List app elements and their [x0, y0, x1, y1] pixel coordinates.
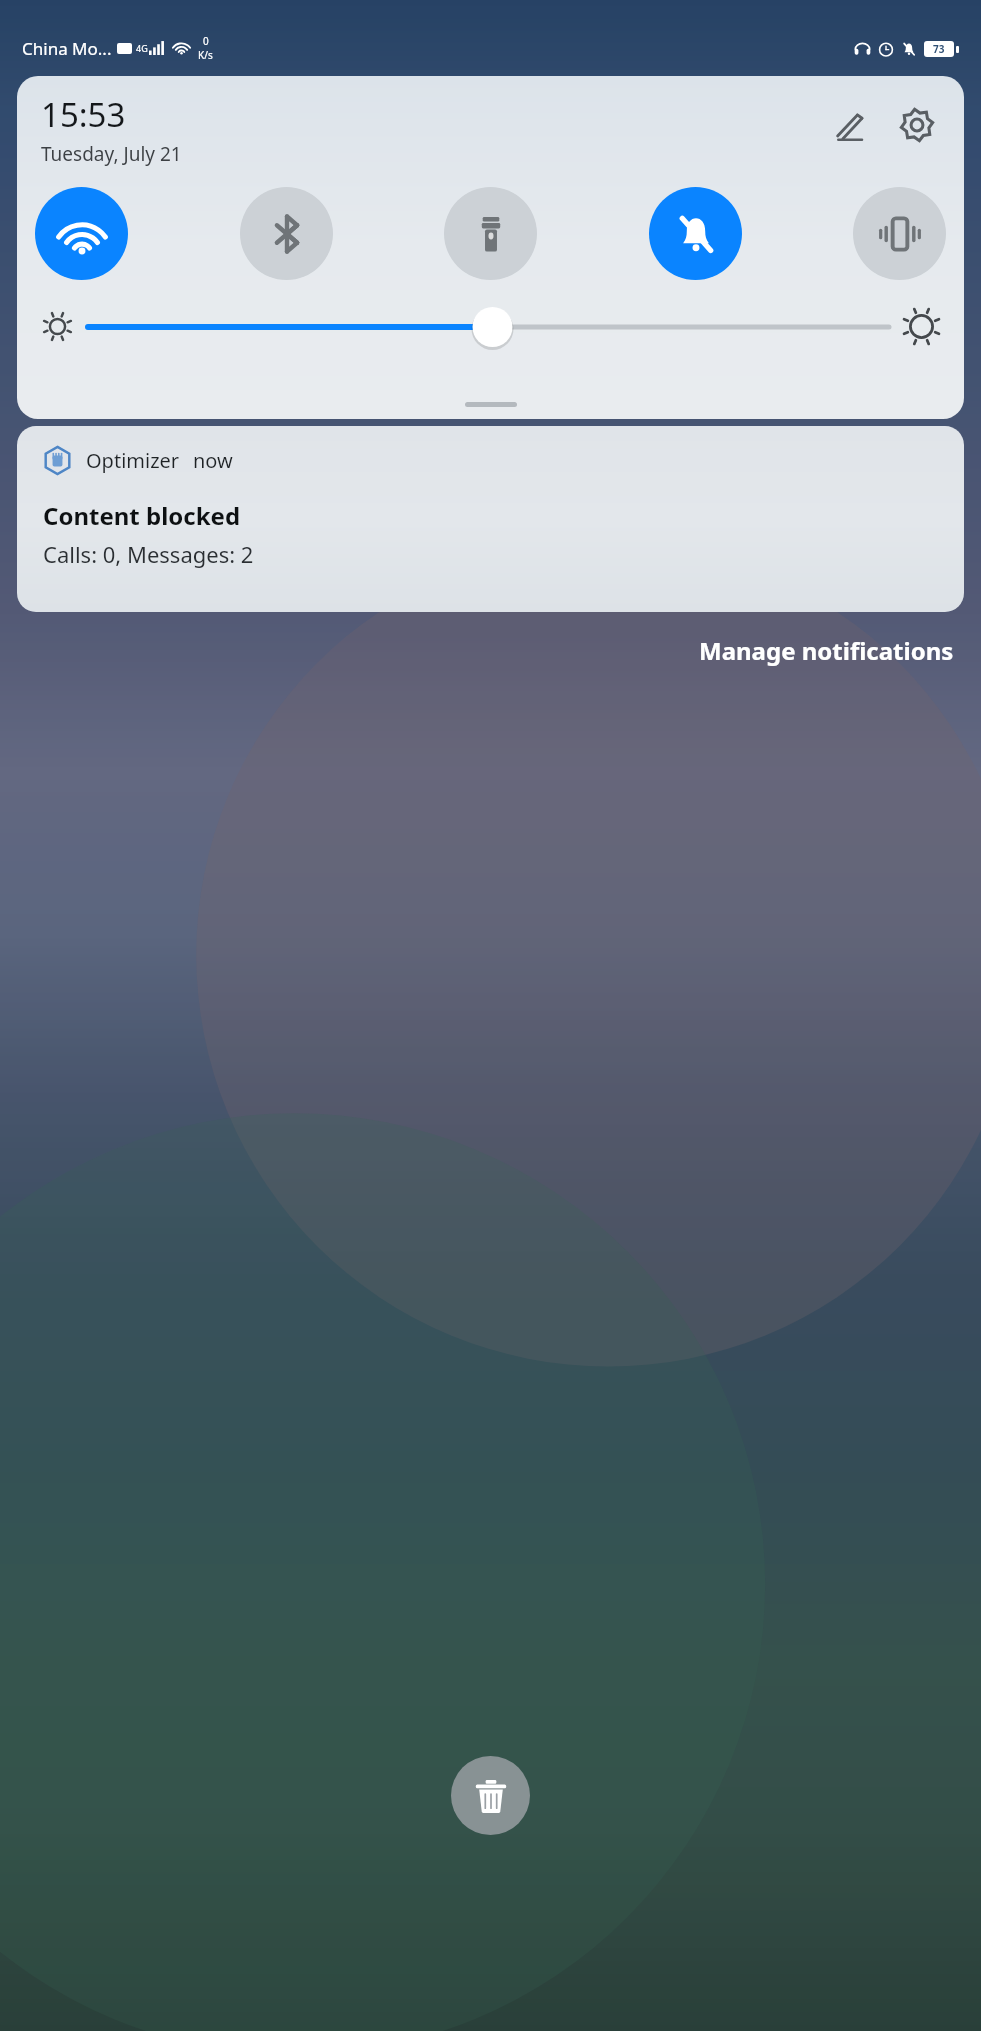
staticText: Tuesday, July 21	[41, 141, 182, 167]
button[interactable]: Vibrate	[853, 187, 946, 280]
staticText: Content blocked	[43, 499, 241, 532]
button[interactable]: Wi-Fi	[35, 187, 128, 280]
staticText: Manage notifications	[699, 634, 954, 667]
button[interactable]: Settings	[894, 102, 940, 148]
button[interactable]: Flashlight	[444, 187, 537, 280]
button[interactable]: Clear all notifications	[451, 1756, 530, 1835]
button[interactable]: Silent mode	[649, 187, 742, 280]
staticText: 0	[203, 34, 209, 48]
button[interactable]: Edit	[826, 102, 872, 148]
button[interactable]: Bluetooth	[240, 187, 333, 280]
staticText: 4G	[136, 42, 148, 54]
button[interactable]: Optimizer	[17, 426, 964, 612]
button[interactable]	[88, 310, 889, 344]
staticText: 15:53	[41, 92, 126, 137]
button[interactable]: Manage notifications	[0, 622, 954, 678]
staticText: Optimizer	[86, 447, 180, 474]
staticText: Calls: 0, Messages: 2	[43, 539, 254, 569]
staticText: K/s	[198, 48, 213, 62]
staticText: 73	[933, 42, 945, 56]
staticText: now	[193, 447, 233, 474]
staticText: China Mo...	[22, 37, 112, 60]
